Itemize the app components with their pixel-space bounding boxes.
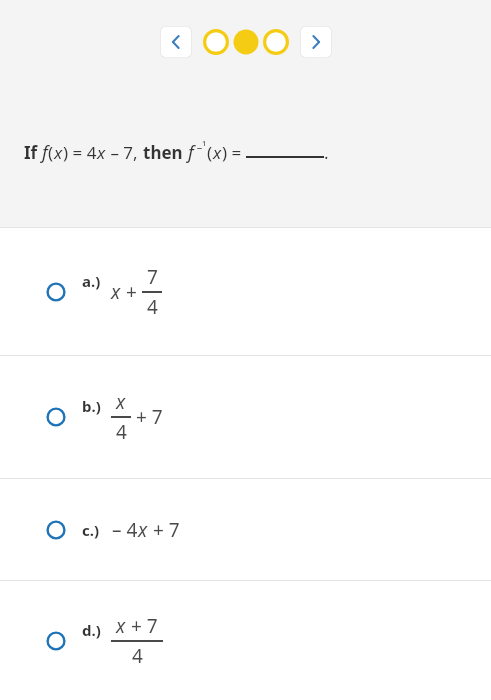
staticText: ) =: [222, 141, 246, 164]
staticText: 7: [147, 264, 158, 290]
staticText: d.): [82, 620, 101, 640]
staticText: x: [116, 613, 126, 639]
staticText: x: [116, 389, 126, 415]
staticText: f: [42, 140, 48, 165]
button[interactable]: Question: [262, 28, 290, 56]
staticText: b.): [82, 396, 101, 416]
staticText: – 4: [112, 517, 138, 543]
staticText: c.): [82, 520, 100, 540]
staticText: ) = 4: [63, 141, 97, 164]
staticText: If: [24, 141, 42, 164]
staticText: + 7: [148, 517, 180, 543]
staticText: a.): [82, 271, 101, 291]
staticText: (: [48, 141, 54, 164]
button[interactable]: d.): [0, 581, 491, 700]
staticText: + 7: [131, 404, 163, 430]
staticText: x: [213, 141, 222, 164]
staticText: then: [143, 141, 188, 164]
staticText: x: [97, 141, 106, 164]
button[interactable]: Current question: [232, 28, 260, 56]
staticText: +: [121, 279, 142, 305]
button[interactable]: c.): [0, 479, 491, 580]
staticText: 4: [132, 643, 143, 669]
button[interactable]: b.): [0, 356, 491, 478]
staticText: 4: [147, 294, 158, 320]
staticText: 4: [116, 419, 127, 445]
staticText: x: [111, 279, 121, 305]
staticText: (: [207, 141, 213, 164]
button[interactable]: Next question: [300, 26, 332, 58]
button[interactable]: Previous question: [160, 26, 192, 58]
staticText: f: [188, 140, 194, 165]
staticText: – 7,: [106, 141, 143, 164]
button[interactable]: Question: [202, 28, 230, 56]
button[interactable]: a.): [0, 228, 491, 355]
staticText: .: [324, 141, 329, 164]
staticText: + 7: [126, 613, 158, 639]
staticText: x: [138, 517, 148, 543]
staticText: –¹: [194, 139, 207, 154]
staticText: x: [54, 141, 63, 164]
